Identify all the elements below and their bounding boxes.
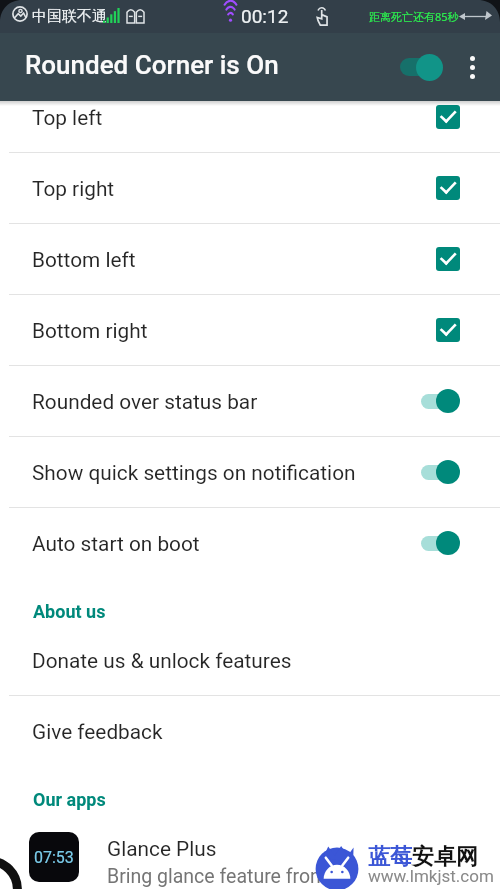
staticText: www.lmkjst.com xyxy=(368,866,494,886)
staticText: 07:53 xyxy=(34,848,74,867)
button[interactable]: Bottom left xyxy=(0,224,500,295)
staticText: Give feedback xyxy=(32,720,163,744)
button[interactable]: Toggle rounded corners xyxy=(392,45,452,89)
staticText: 蓝莓 xyxy=(368,843,412,871)
staticText: Auto start on boot xyxy=(32,532,200,556)
staticText: Bring glance feature fron. xyxy=(107,865,326,888)
button[interactable]: Bottom right xyxy=(0,295,500,366)
staticText: Glance Plus xyxy=(107,837,217,861)
staticText: About us xyxy=(33,601,106,622)
staticText: Rounded Corner is On xyxy=(25,50,279,80)
staticText: Show quick settings on notification xyxy=(32,461,356,485)
staticText: Top left xyxy=(32,106,103,130)
button[interactable]: Top right xyxy=(0,153,500,224)
button[interactable]: Give feedback xyxy=(0,696,500,766)
button[interactable]: 07:53 xyxy=(29,832,500,889)
button[interactable]: Show quick settings on notification xyxy=(0,437,500,508)
staticText: 安卓网 xyxy=(412,843,478,871)
staticText: Donate us & unlock features xyxy=(32,649,292,673)
button[interactable]: Donate us & unlock features xyxy=(0,625,500,696)
staticText: 00:12 xyxy=(241,5,289,27)
staticText: Bottom left xyxy=(32,248,136,272)
staticText: 中国联不通 xyxy=(32,7,107,26)
staticText: Top right xyxy=(32,177,115,201)
staticText: Rounded over status bar xyxy=(32,390,258,414)
staticText: 距离死亡还有85秒 xyxy=(369,9,459,24)
button[interactable]: Auto start on boot xyxy=(0,508,500,578)
staticText: Our apps xyxy=(33,789,106,810)
button[interactable]: More options xyxy=(452,45,492,89)
button[interactable]: Top left xyxy=(0,82,500,153)
button[interactable]: Rounded over status bar xyxy=(0,366,500,437)
staticText: Bottom right xyxy=(32,319,148,343)
